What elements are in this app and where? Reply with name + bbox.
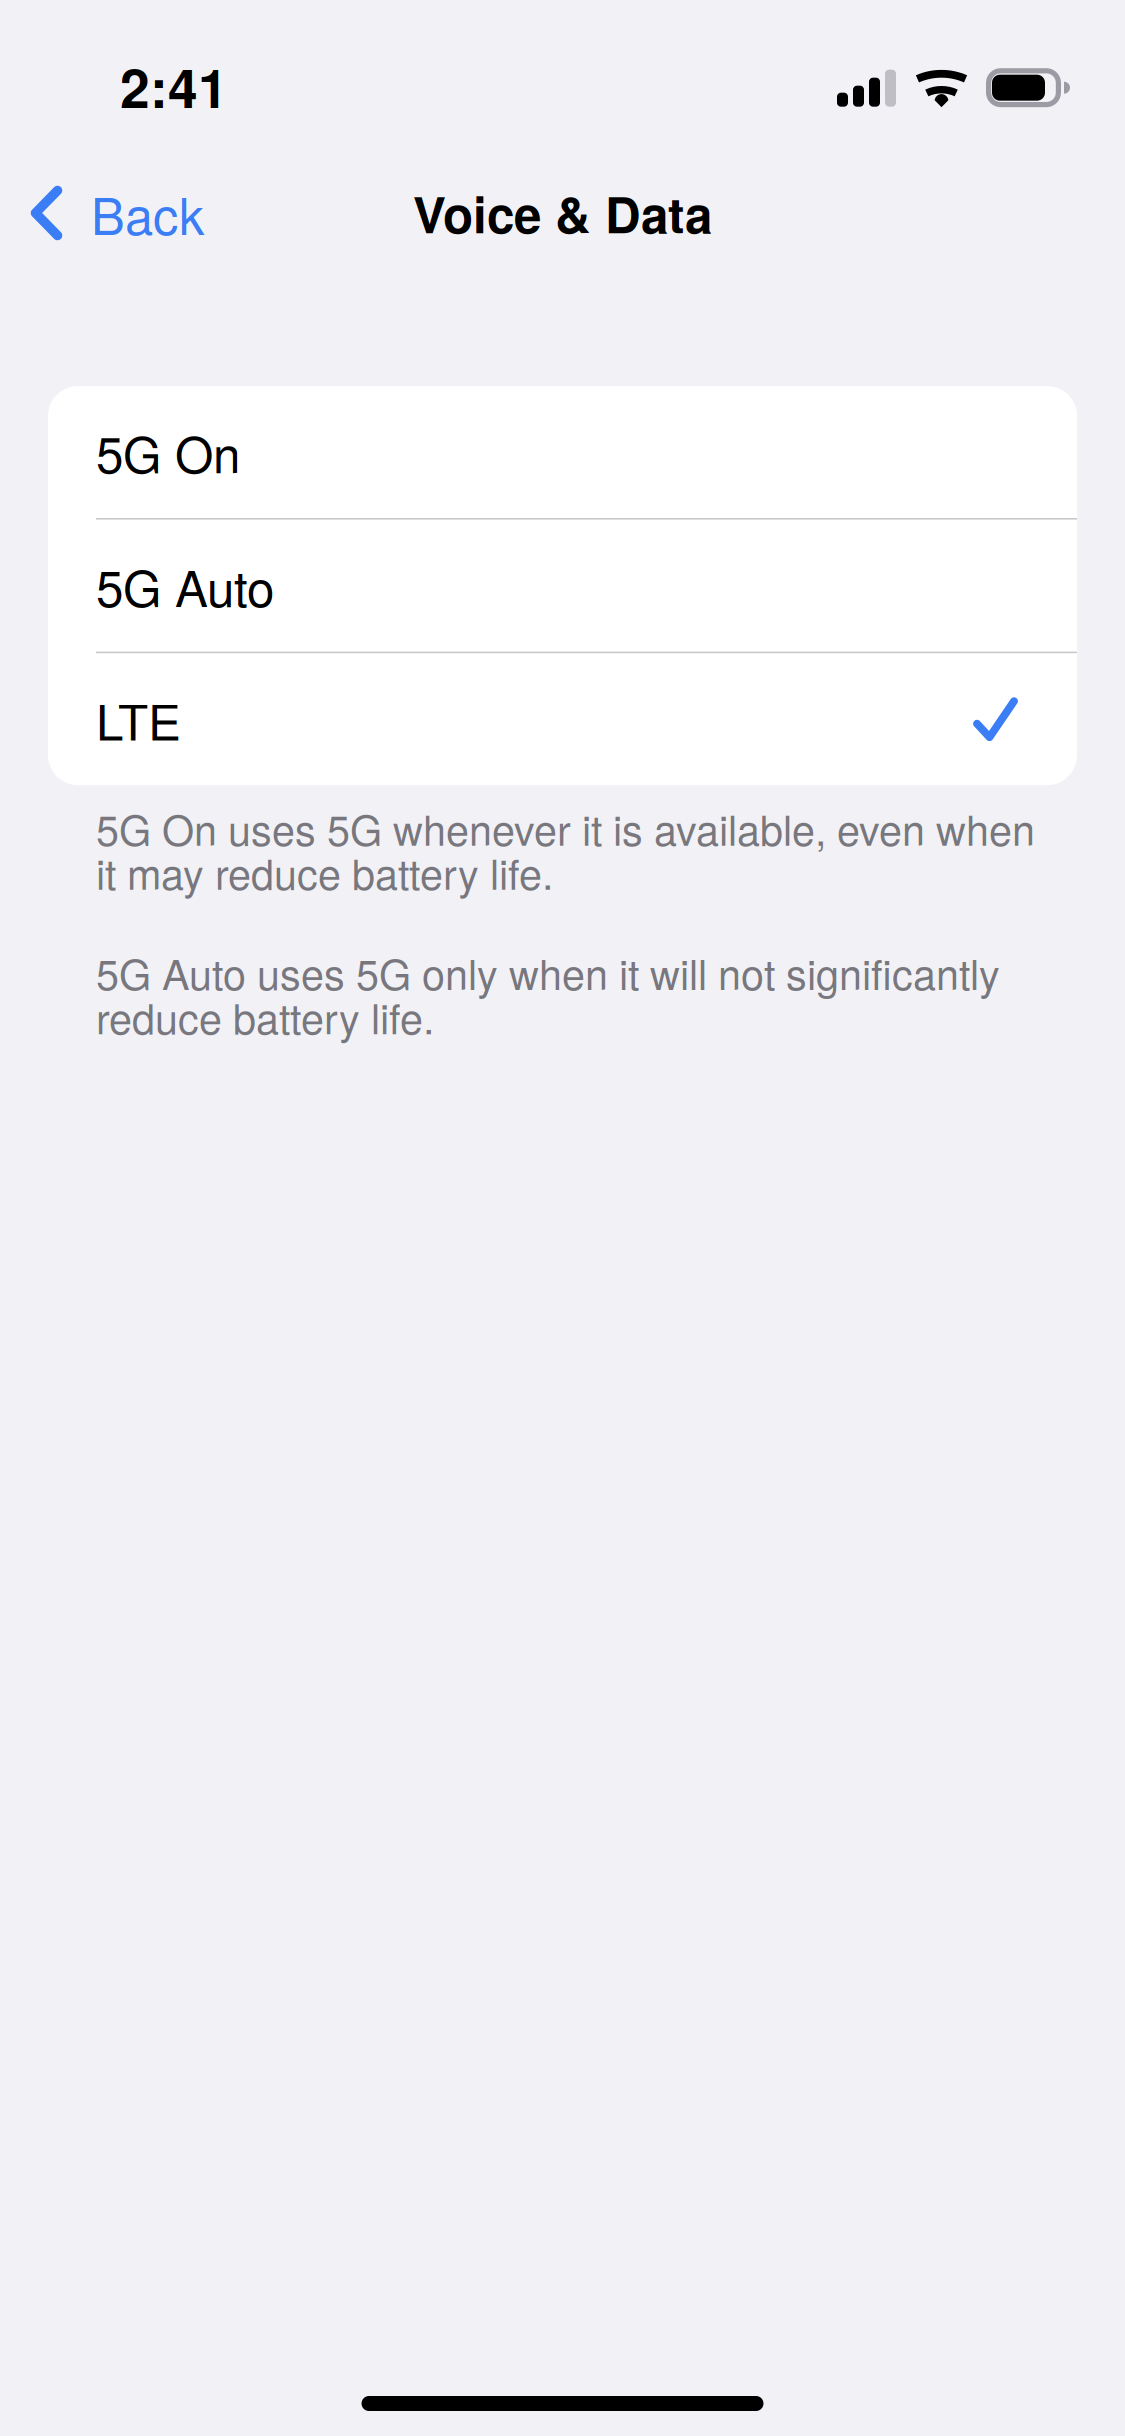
button[interactable]: 5G On xyxy=(48,386,1077,518)
staticText: LTE xyxy=(96,684,181,754)
staticText: Back xyxy=(91,177,204,249)
button[interactable]: LTE xyxy=(48,653,1077,785)
staticText: Voice & Data xyxy=(413,178,712,248)
staticText: 2:41 xyxy=(120,48,228,124)
button[interactable]: 5G Auto xyxy=(48,520,1077,652)
staticText: 5G Auto xyxy=(96,550,274,621)
staticText: 5G On uses 5G whenever it is available, … xyxy=(96,798,1035,902)
button[interactable]: Back xyxy=(0,158,228,268)
staticText: 5G On xyxy=(96,417,240,487)
staticText: 5G Auto uses 5G only when it will not si… xyxy=(96,943,1000,1046)
